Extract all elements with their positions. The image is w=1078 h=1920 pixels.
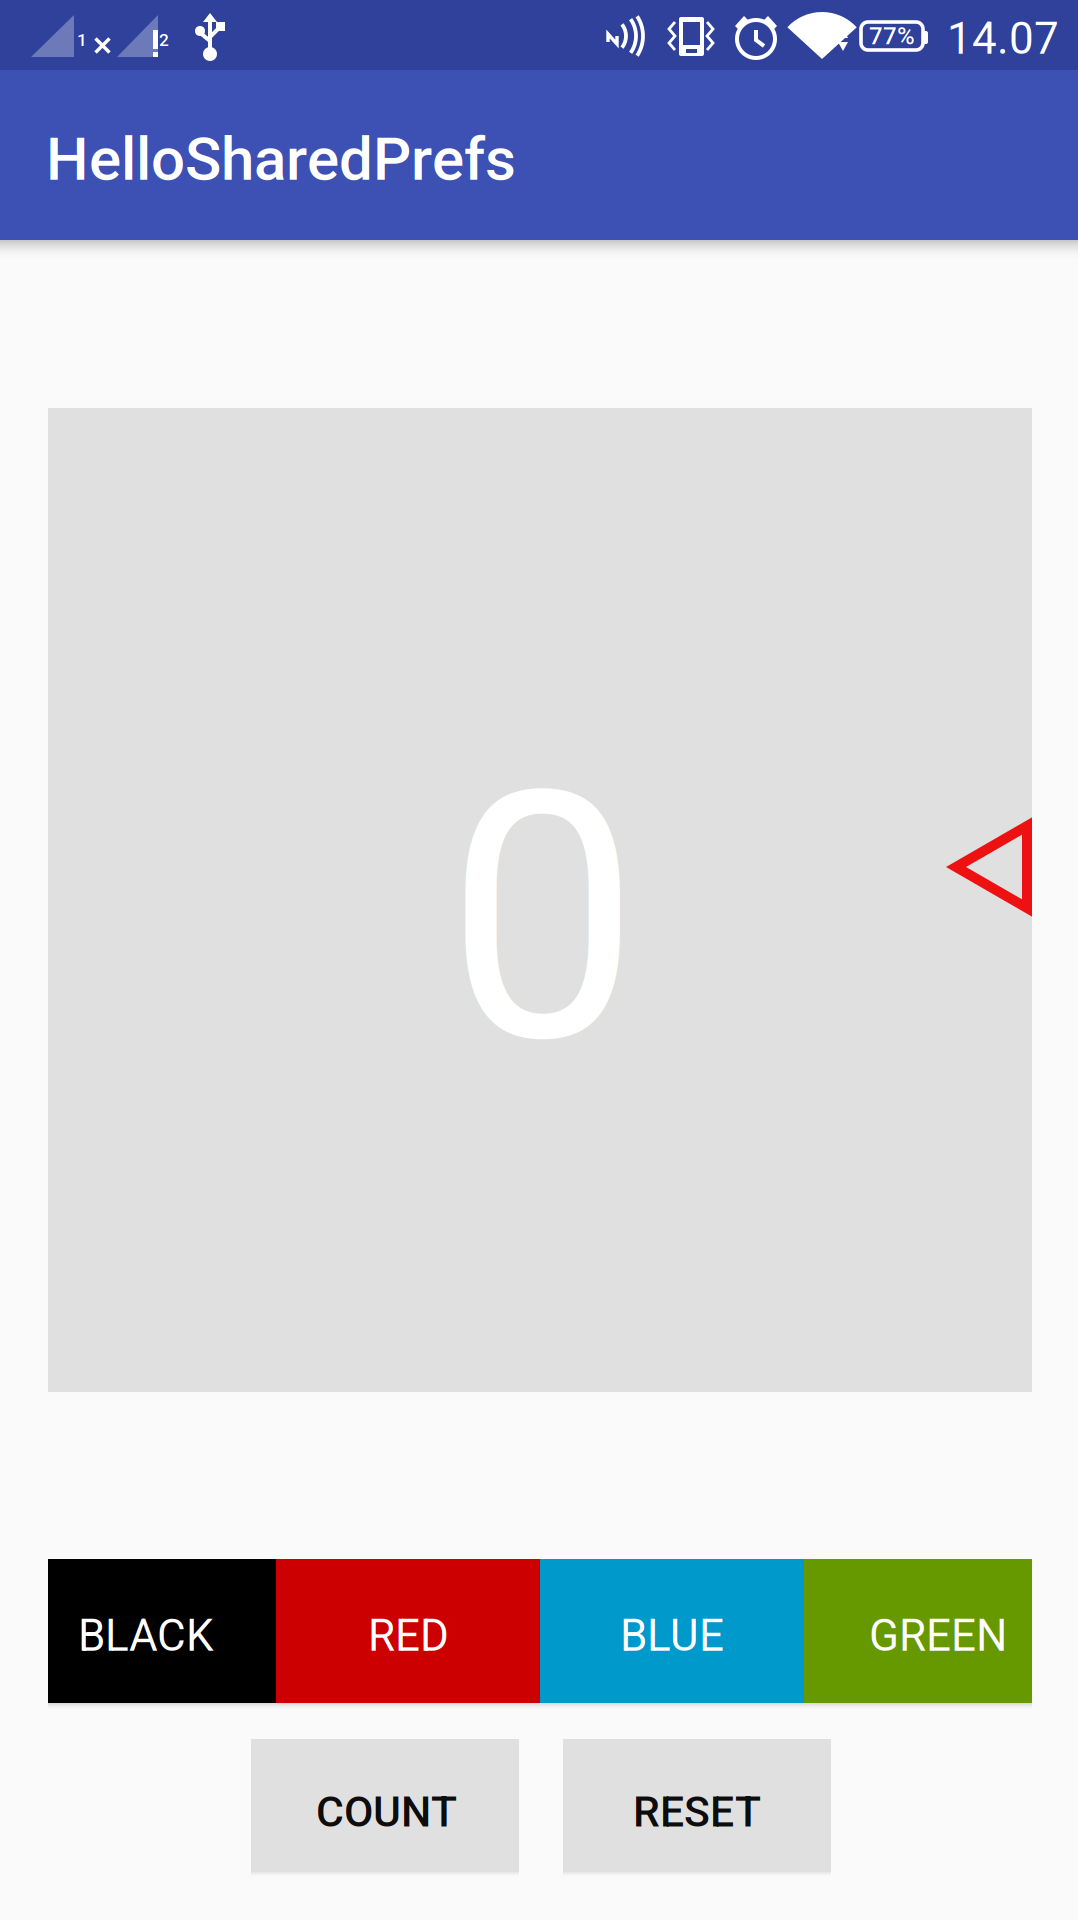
button[interactable]: BLACK (48, 1559, 276, 1703)
button[interactable]: GREEN (804, 1559, 1032, 1703)
button[interactable]: RED (276, 1559, 540, 1703)
staticText: 77% (869, 22, 915, 50)
staticText: 0 (446, 717, 639, 1120)
staticText: BLACK (78, 1610, 214, 1662)
button[interactable]: COUNT (251, 1739, 519, 1871)
button[interactable]: RESET (563, 1739, 831, 1871)
staticText: RED (368, 1610, 449, 1662)
staticText: RESET (633, 1787, 761, 1837)
staticText: GREEN (869, 1610, 1007, 1662)
button[interactable]: BLUE (540, 1559, 804, 1703)
staticText: HelloSharedPrefs (46, 124, 516, 194)
staticText: 2 (159, 30, 169, 50)
staticText: 1 (77, 30, 87, 50)
staticText: BLUE (620, 1610, 724, 1662)
staticText: COUNT (316, 1787, 457, 1837)
staticText: 14.07 (947, 13, 1059, 65)
